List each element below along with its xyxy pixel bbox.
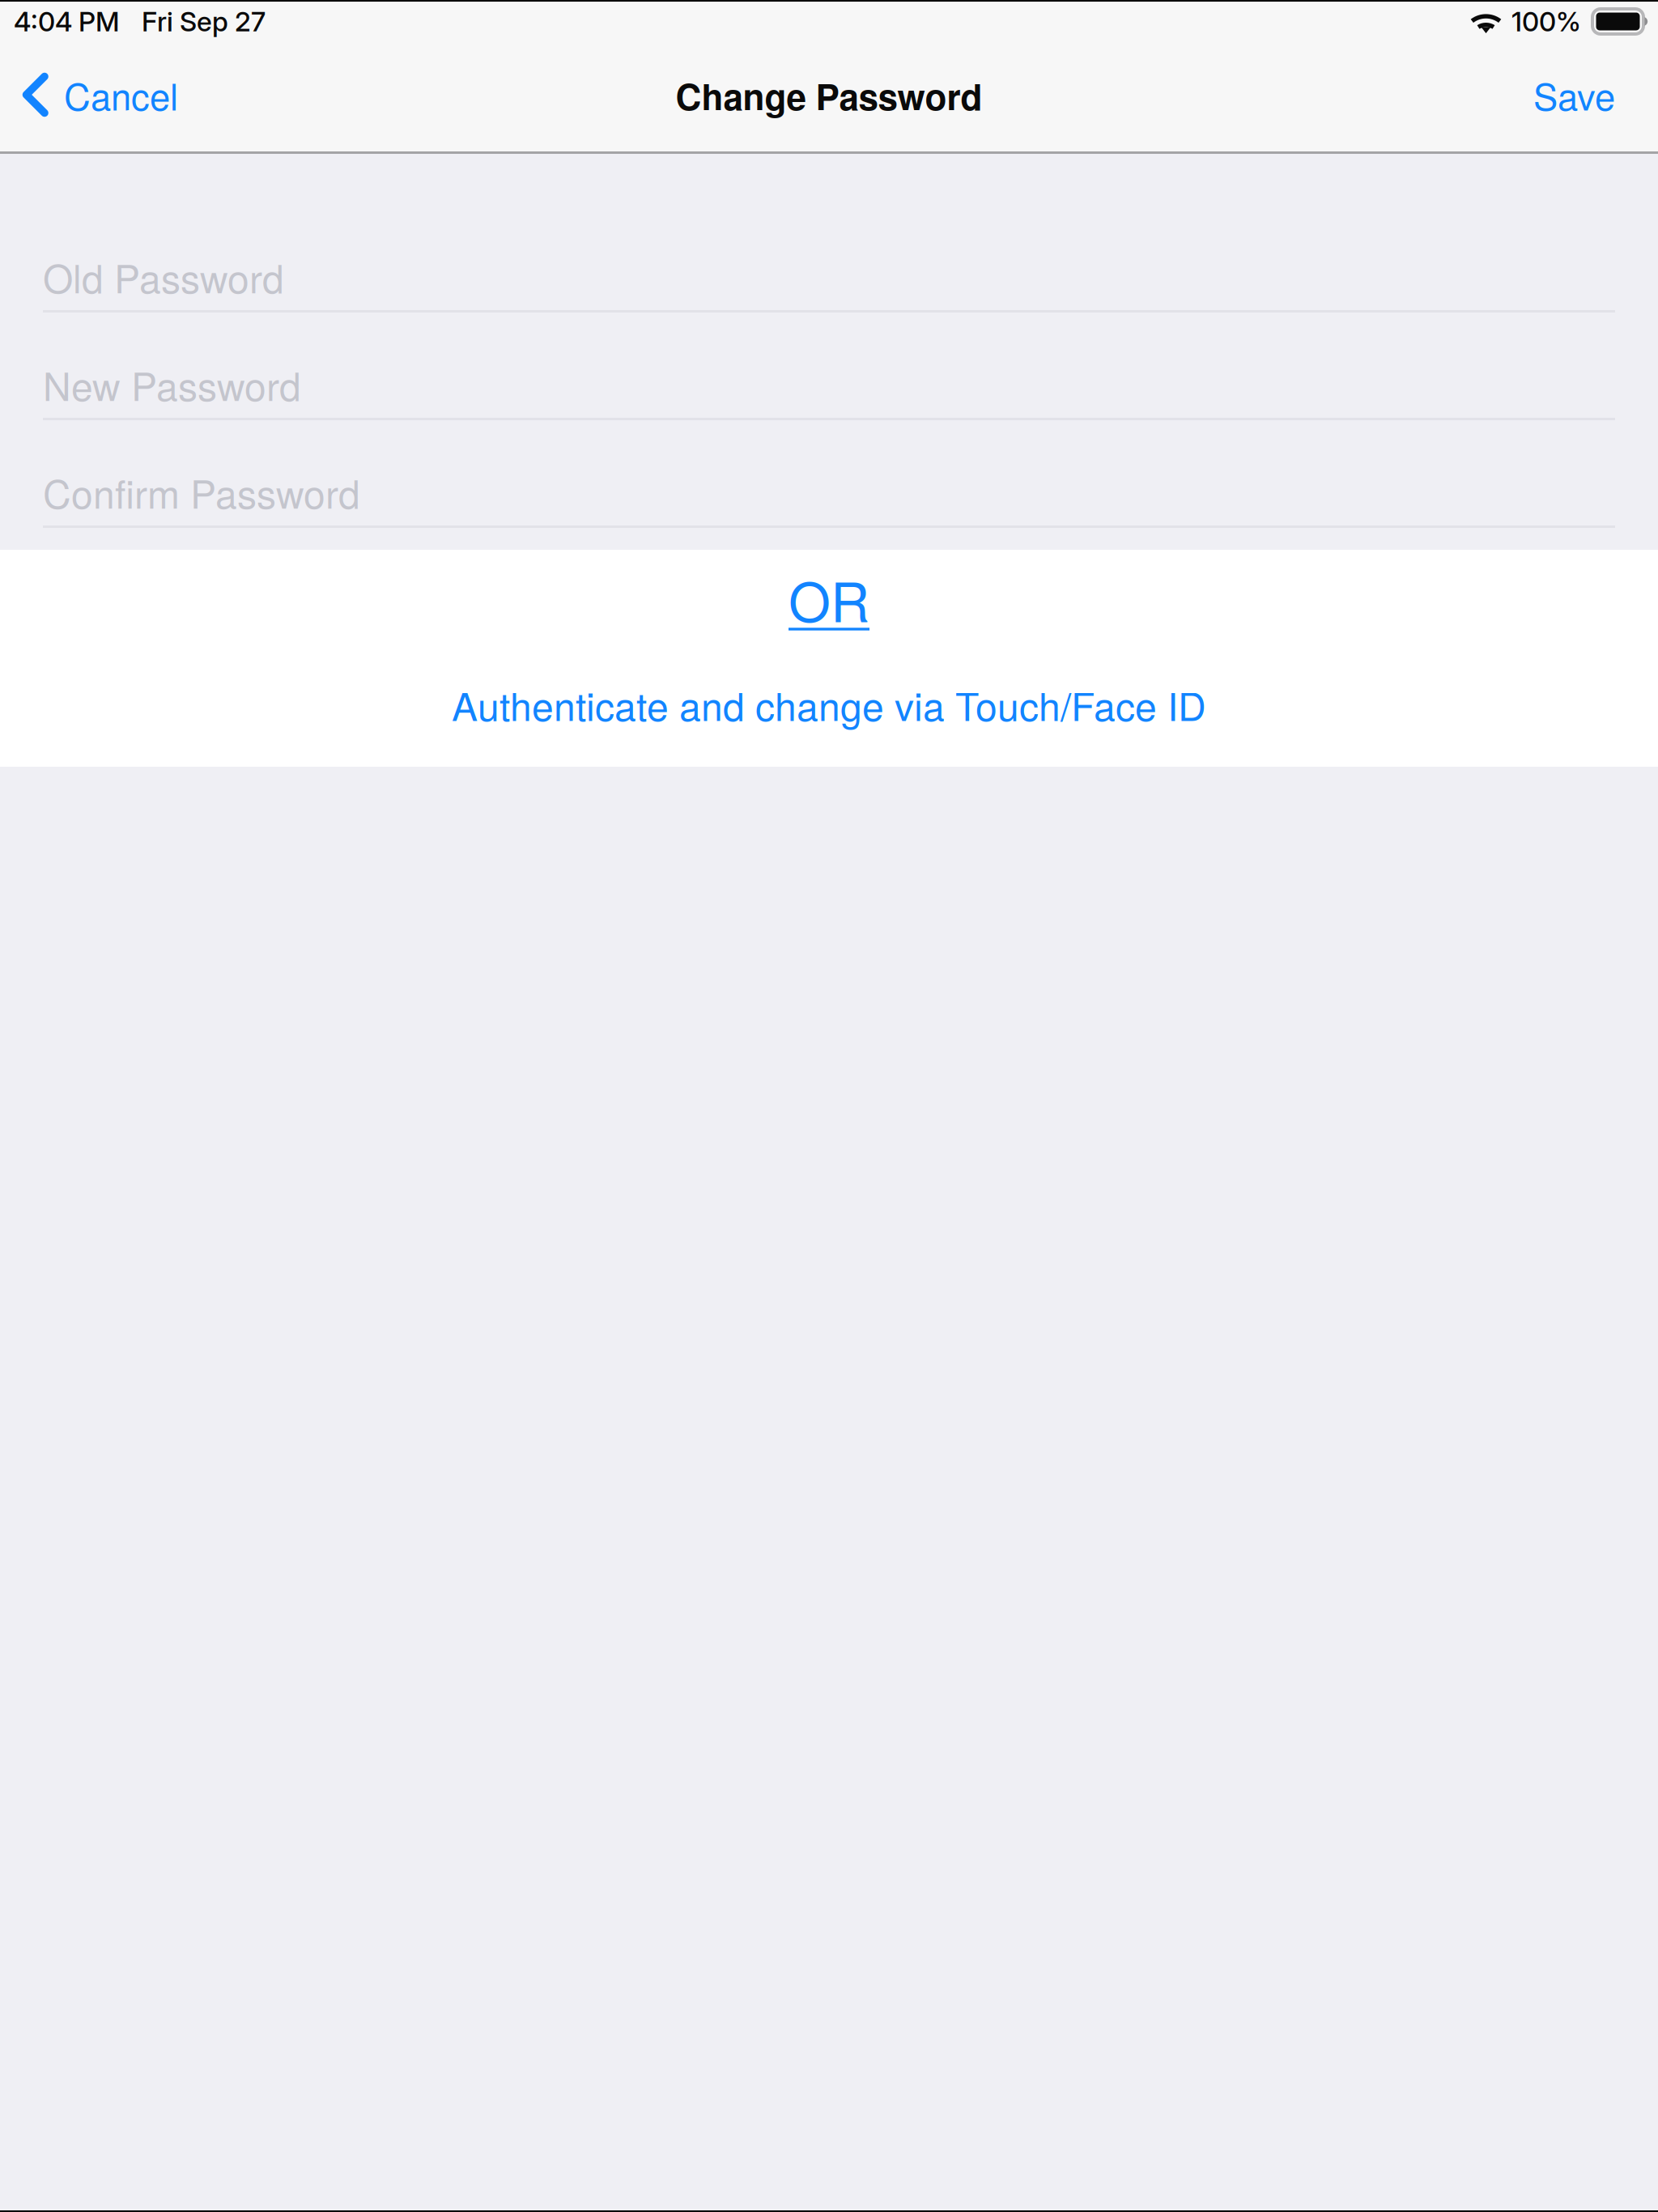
button[interactable]: OR bbox=[0, 550, 1658, 641]
staticText: 100% bbox=[1511, 5, 1581, 38]
staticText: Save bbox=[1533, 68, 1615, 121]
staticText: Change Password bbox=[676, 70, 982, 121]
button[interactable]: Authenticate and change via Touch/Face I… bbox=[0, 641, 1658, 767]
staticText: Authenticate and change via Touch/Face I… bbox=[452, 676, 1206, 732]
button[interactable]: New Password bbox=[43, 313, 1615, 420]
staticText: New Password bbox=[43, 356, 301, 412]
staticText: Fri Sep 27 bbox=[142, 5, 266, 38]
button[interactable]: Save bbox=[1514, 38, 1658, 151]
button[interactable]: Old Password bbox=[43, 205, 1615, 313]
staticText: Cancel bbox=[64, 68, 178, 121]
button[interactable]: Confirm Password bbox=[43, 420, 1615, 528]
staticText: Confirm Password bbox=[43, 464, 360, 520]
staticText: OR bbox=[789, 560, 869, 638]
button[interactable]: Cancel bbox=[0, 38, 198, 151]
staticText: 4:04 PM bbox=[14, 5, 120, 38]
staticText: Old Password bbox=[43, 249, 284, 304]
